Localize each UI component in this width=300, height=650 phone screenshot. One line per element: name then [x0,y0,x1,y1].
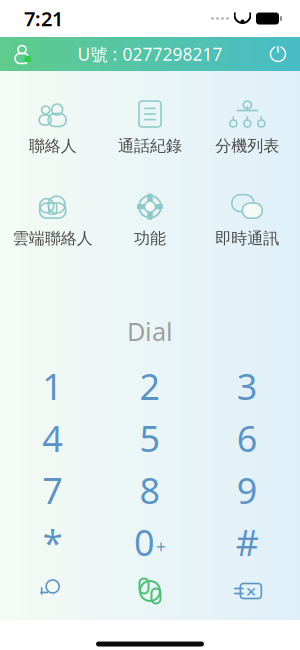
staticText: U號 : 0277298217 [77,42,222,65]
staticText: 8 [139,466,160,514]
button[interactable]: Call [101,568,199,614]
button[interactable]: 4 [4,412,101,464]
button[interactable]: 通話紀錄 [101,93,199,162]
button[interactable]: Back [4,568,101,614]
staticText: 7:21 [24,5,63,32]
staticText: # [236,518,259,566]
staticText: 聯絡人 [29,136,77,156]
staticText: 0 [134,518,155,566]
staticText: 5 [139,414,160,462]
button[interactable]: 功能 [101,186,199,254]
staticText: 雲端聯絡人 [13,229,93,248]
staticText: 3 [237,362,258,410]
button[interactable]: 即時通訊 [199,186,296,254]
button[interactable]: 2 [101,360,199,412]
button[interactable]: * [4,516,101,568]
button[interactable]: 6 [199,412,296,464]
staticText: 1 [42,362,63,410]
staticText: 6 [237,414,258,462]
button[interactable]: 聯絡人 [4,93,101,162]
staticText: 分機列表 [215,136,279,156]
button[interactable]: 7 [4,464,101,516]
staticText: + [156,535,166,558]
staticText: Dial [127,314,173,348]
button[interactable]: # [199,516,296,568]
button[interactable]: 3 [199,360,296,412]
staticText: 9 [237,466,258,514]
button[interactable]: Account [0,37,44,71]
button[interactable]: 8 [101,464,199,516]
button[interactable]: 9 [199,464,296,516]
staticText: * [43,518,63,566]
staticText: 4 [42,414,63,462]
button[interactable]: 5 [101,412,199,464]
button[interactable]: 1 [4,360,101,412]
button[interactable]: Delete [199,568,296,614]
staticText: 功能 [134,229,166,248]
button[interactable]: 分機列表 [199,93,296,162]
staticText: 通話紀錄 [118,136,182,156]
button[interactable]: 0 [101,516,199,568]
staticText: 7 [42,466,63,514]
staticText: 即時通訊 [215,229,279,248]
button[interactable]: Power [256,37,300,71]
staticText: × [246,579,257,603]
staticText: 2 [139,362,160,410]
button[interactable]: 雲端聯絡人 [4,186,101,254]
